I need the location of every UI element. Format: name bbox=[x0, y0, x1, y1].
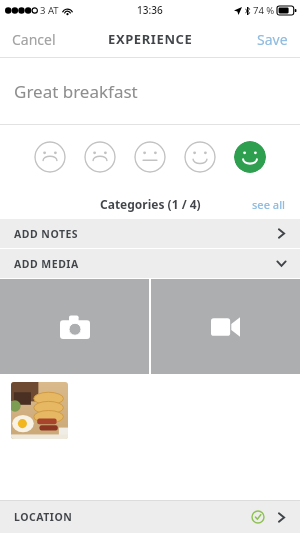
button[interactable]: LOCATION bbox=[0, 501, 300, 533]
button[interactable]: Mood 4 bbox=[184, 141, 216, 173]
button[interactable]: Save bbox=[245, 22, 300, 57]
button[interactable]: see all bbox=[252, 197, 300, 212]
button[interactable]: Mood 5 bbox=[234, 141, 266, 173]
button[interactable]: Categories (1 / 4) bbox=[100, 196, 201, 212]
staticText: Save bbox=[257, 30, 288, 49]
button[interactable]: ADD MEDIA bbox=[0, 249, 300, 278]
button[interactable]: Mood 1 bbox=[34, 141, 66, 173]
button[interactable]: Record video bbox=[151, 279, 300, 374]
button[interactable]: Cancel bbox=[0, 22, 68, 57]
staticText: 3 AT bbox=[40, 4, 59, 17]
staticText: LOCATION bbox=[14, 510, 73, 524]
button[interactable]: Great breakfast bbox=[0, 58, 300, 125]
button[interactable]: Mood 2 bbox=[84, 141, 116, 173]
button[interactable]: ADD NOTES bbox=[0, 219, 300, 248]
staticText: 13:36 bbox=[137, 3, 163, 17]
staticText: Great breakfast bbox=[14, 80, 138, 103]
staticText: ADD MEDIA bbox=[14, 257, 79, 271]
staticText: EXPERIENCE bbox=[108, 30, 193, 48]
staticText: ADD NOTES bbox=[14, 227, 79, 241]
staticText: see all bbox=[252, 197, 286, 212]
staticText: 74 % bbox=[253, 4, 275, 17]
button[interactable]: Mood 3 bbox=[134, 141, 166, 173]
button[interactable]: Take photo bbox=[0, 279, 149, 374]
staticText: Cancel bbox=[12, 30, 56, 49]
button[interactable]: Photo of breakfast bbox=[11, 382, 68, 439]
